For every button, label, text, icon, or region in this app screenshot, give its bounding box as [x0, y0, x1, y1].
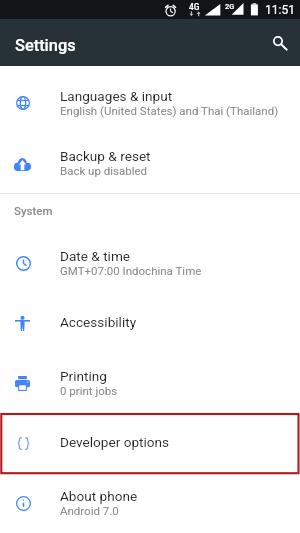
- staticText: GMT+07:00 Indochina Time: [60, 264, 202, 277]
- button[interactable]: Languages & input: [0, 73, 300, 133]
- staticText: 4G: [189, 2, 200, 12]
- button[interactable]: Accessibility: [0, 293, 300, 353]
- staticText: 0 print jobs: [60, 384, 118, 397]
- button[interactable]: Search: [258, 21, 298, 61]
- button[interactable]: Developer options: [0, 413, 300, 473]
- button[interactable]: About phone: [0, 473, 300, 533]
- staticText: Android 7.0: [60, 504, 119, 517]
- staticText: Developer options: [60, 434, 170, 450]
- staticText: 2G: [225, 2, 235, 11]
- staticText: Date & time: [60, 248, 131, 264]
- button[interactable]: Backup & reset: [0, 133, 300, 193]
- staticText: About phone: [60, 488, 138, 504]
- staticText: Backup & reset: [60, 148, 151, 164]
- button[interactable]: Printing: [0, 353, 300, 413]
- staticText: Back up disabled: [60, 164, 148, 177]
- staticText: Printing: [60, 368, 107, 384]
- staticText: 11:51: [265, 3, 295, 17]
- staticText: Accessibility: [60, 314, 137, 330]
- staticText: English (United States) and Thai (Thaila…: [60, 104, 279, 117]
- staticText: System: [14, 204, 53, 217]
- staticText: Settings: [15, 36, 76, 55]
- staticText: Languages & input: [60, 88, 173, 104]
- button[interactable]: Date & time: [0, 233, 300, 293]
